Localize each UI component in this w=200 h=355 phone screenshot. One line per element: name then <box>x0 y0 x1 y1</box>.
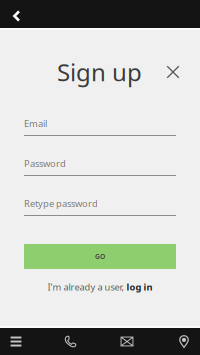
staticText: Sign up <box>57 56 142 88</box>
staticText: Password <box>24 157 66 170</box>
staticText: Retype password <box>24 197 98 210</box>
staticText: log in <box>126 281 152 293</box>
staticText: I'm already a user, <box>47 281 126 293</box>
button[interactable]: Call <box>43 328 98 355</box>
button[interactable]: Close <box>162 61 184 83</box>
staticText: Email <box>24 117 47 130</box>
button[interactable]: I'm already a user, <box>24 281 176 293</box>
button[interactable]: Location <box>154 328 200 355</box>
button[interactable]: Menu <box>0 328 43 355</box>
button[interactable]: GO <box>24 244 176 269</box>
staticText: GO <box>95 252 105 261</box>
button[interactable]: Mail <box>98 328 154 355</box>
button[interactable]: Back <box>0 0 33 28</box>
